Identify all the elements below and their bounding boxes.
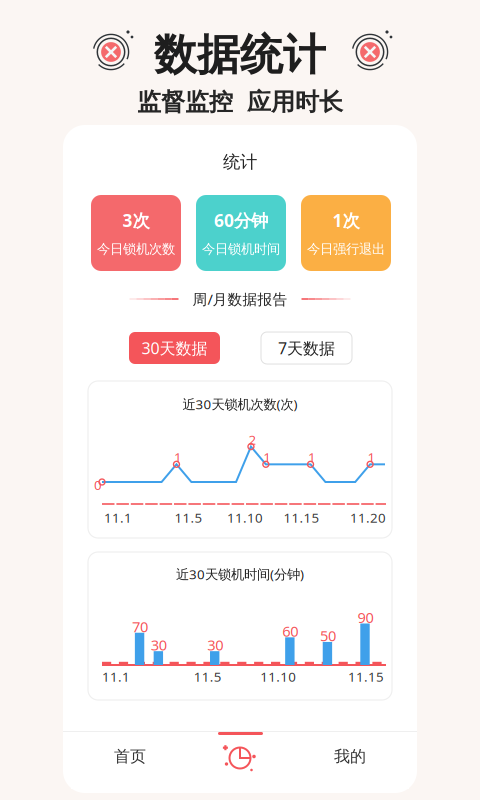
staticText: 近30天锁机次数(次) xyxy=(182,395,297,413)
staticText: 统计 xyxy=(223,151,257,173)
staticText: 11.15 xyxy=(348,668,384,685)
staticText: 1 xyxy=(174,448,182,466)
staticText: 今日锁机次数 xyxy=(97,241,175,257)
staticText: 3次 xyxy=(122,209,149,232)
staticText: 30 xyxy=(151,635,167,655)
staticText: 1次 xyxy=(332,209,359,232)
staticText: 11.10 xyxy=(227,509,263,526)
button[interactable]: 3次 xyxy=(91,195,181,271)
staticText: 30 xyxy=(207,635,223,655)
staticText: 0 xyxy=(94,476,102,494)
button[interactable]: 60分钟 xyxy=(196,195,286,271)
staticText: 30天数据 xyxy=(141,337,207,359)
button[interactable]: 我的 xyxy=(291,732,409,789)
button[interactable]: 首页 xyxy=(71,732,189,789)
staticText: 60 xyxy=(282,621,298,641)
staticText: 数据统计 xyxy=(154,29,326,81)
staticText: 近30天锁机时间(分钟) xyxy=(176,565,304,583)
staticText: 50 xyxy=(320,626,336,645)
staticText: 70 xyxy=(132,617,148,636)
button[interactable]: 7天数据 xyxy=(261,332,352,364)
staticText: 今日强行退出 xyxy=(307,241,385,257)
staticText: 11.20 xyxy=(350,509,386,526)
button[interactable]: 统计 xyxy=(181,732,299,789)
staticText: 今日锁机时间 xyxy=(202,241,280,257)
staticText: 11.15 xyxy=(283,509,319,526)
staticText: 11.5 xyxy=(175,509,203,526)
staticText: 1 xyxy=(308,448,316,466)
staticText: 1 xyxy=(368,448,376,466)
staticText: 90 xyxy=(357,607,373,627)
staticText: 1 xyxy=(263,448,271,466)
button[interactable]: 1次 xyxy=(301,195,391,271)
staticText: 首页 xyxy=(114,747,146,766)
staticText: 我的 xyxy=(334,747,366,766)
staticText: 11.10 xyxy=(260,668,296,685)
staticText: 周/月数据报告 xyxy=(192,289,287,309)
staticText: 60分钟 xyxy=(214,209,268,232)
button[interactable]: 30天数据 xyxy=(129,332,220,364)
staticText: 7天数据 xyxy=(278,337,335,359)
staticText: 11.1 xyxy=(102,668,130,685)
staticText: 11.1 xyxy=(104,509,132,526)
staticText: 监督监控 应用时长 xyxy=(137,87,343,117)
staticText: 11.5 xyxy=(194,668,222,685)
staticText: 2 xyxy=(248,431,256,448)
